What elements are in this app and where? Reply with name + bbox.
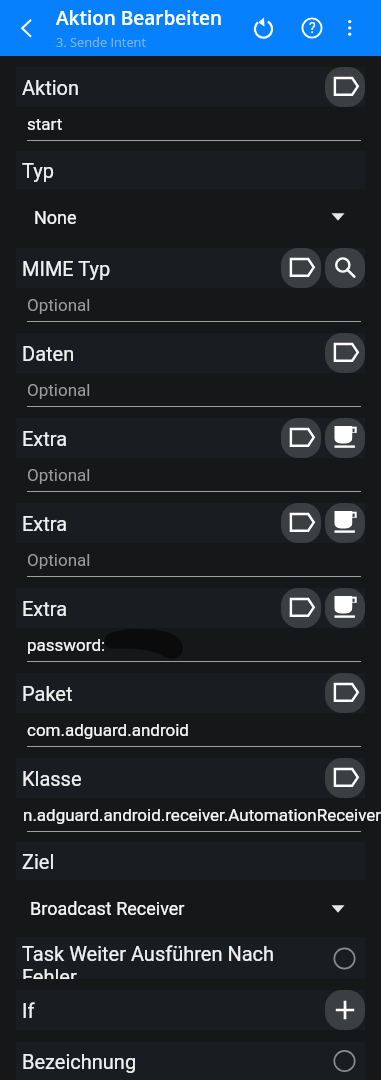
button[interactable]: Variable (325, 588, 365, 628)
staticText: Extra (22, 512, 68, 535)
staticText: Ziel (22, 850, 55, 873)
button[interactable]: Add (325, 990, 365, 1030)
staticText: Aktion Bearbeiten (56, 5, 223, 31)
staticText: Task Weiter Ausführen Nach Fehler (22, 942, 284, 979)
button[interactable]: password: (0, 628, 381, 661)
button[interactable]: Task Weiter Ausführen Nach Fehler (16, 937, 365, 979)
staticText: ? (309, 20, 316, 36)
button[interactable]: Optional (0, 373, 381, 406)
staticText: None (34, 207, 77, 228)
button[interactable]: Extra (16, 588, 365, 628)
button[interactable]: Tag (325, 333, 365, 373)
staticText: Optional (27, 550, 91, 570)
button[interactable]: Typ (16, 151, 365, 189)
button[interactable]: Optional (0, 458, 381, 491)
staticText: Optional (27, 295, 91, 315)
button[interactable]: Tag (281, 503, 321, 543)
button[interactable]: Back (2, 4, 50, 52)
button[interactable]: Tag (281, 418, 321, 458)
button[interactable]: Help (290, 6, 334, 50)
staticText: If (22, 999, 35, 1022)
button[interactable]: n.adguard.android.receiver.AutomationRec… (0, 798, 381, 831)
button[interactable]: com.adguard.android (0, 713, 381, 746)
button[interactable]: If (16, 990, 365, 1030)
button[interactable]: Broadcast Receiver (0, 880, 381, 937)
staticText: n.adguard.android.receiver.AutomationRec… (23, 805, 381, 825)
button[interactable]: Extra (16, 418, 365, 458)
button[interactable]: Tag (281, 588, 321, 628)
button[interactable]: Paket (16, 673, 365, 713)
staticText: Typ (22, 159, 54, 182)
button[interactable]: Search (325, 248, 365, 288)
staticText: Extra (22, 427, 68, 450)
button[interactable]: Tag (325, 673, 365, 713)
button[interactable]: Undo (242, 6, 286, 50)
button[interactable]: MIME Typ (16, 248, 365, 288)
button[interactable]: Toggle Bezeichnung (324, 1042, 365, 1080)
button[interactable]: Bezeichnung (16, 1042, 365, 1080)
button[interactable]: Klasse (16, 758, 365, 798)
button[interactable]: Extra (16, 503, 365, 543)
staticText: Broadcast Receiver (30, 898, 185, 919)
staticText: Bezeichnung (22, 1050, 137, 1073)
button[interactable]: start (0, 107, 381, 140)
staticText: Aktion (22, 76, 80, 99)
staticText: Daten (22, 342, 75, 365)
staticText: Optional (27, 465, 91, 485)
button[interactable]: Toggle Task Weiter Ausführen Nach Fehler (324, 938, 365, 979)
staticText: MIME Typ (22, 257, 111, 280)
staticText: Extra (22, 597, 68, 620)
staticText: Paket (22, 682, 73, 705)
button[interactable]: Optional (0, 288, 381, 321)
button[interactable]: Optional (0, 543, 381, 576)
button[interactable]: Variable (325, 503, 365, 543)
button[interactable]: Tag (281, 248, 321, 288)
staticText: com.adguard.android (27, 720, 189, 740)
button[interactable]: Daten (16, 333, 365, 373)
button[interactable]: Ziel (16, 842, 365, 880)
button[interactable]: Tag (325, 67, 365, 107)
staticText: Klasse (22, 767, 82, 790)
button[interactable]: None (0, 189, 381, 237)
button[interactable]: Variable (325, 418, 365, 458)
staticText: Optional (27, 380, 91, 400)
button[interactable]: Tag (325, 758, 365, 798)
button[interactable]: More options (331, 9, 369, 47)
staticText: 3. Sende Intent (56, 33, 146, 50)
staticText: start (27, 114, 63, 134)
staticText: password: (27, 635, 106, 655)
button[interactable]: Aktion (16, 67, 365, 107)
